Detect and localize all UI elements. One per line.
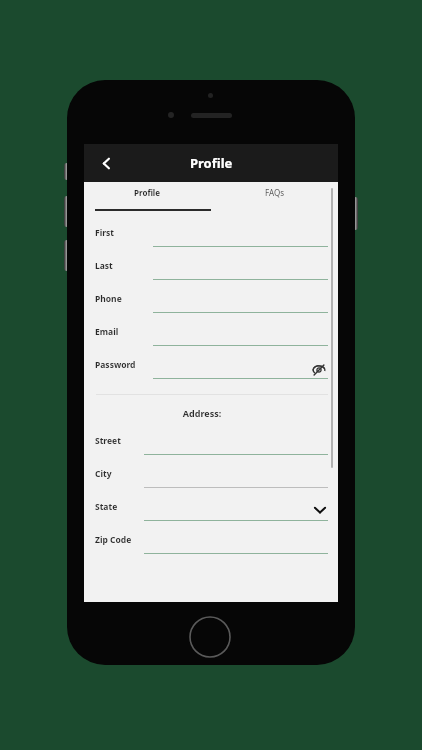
staticText: FAQs (265, 187, 285, 198)
button[interactable]: Email (84, 321, 338, 354)
button[interactable]: Show password (312, 363, 326, 377)
button[interactable]: Profile (84, 182, 211, 203)
button[interactable]: Street (84, 430, 338, 463)
button[interactable]: Back (91, 148, 121, 178)
staticText: Profile (190, 154, 233, 172)
button[interactable]: First (84, 222, 338, 255)
staticText: Phone (95, 293, 153, 305)
button[interactable]: City (84, 463, 338, 496)
staticText: City (95, 468, 144, 480)
button[interactable]: FAQs (211, 182, 338, 203)
staticText: Profile (134, 187, 161, 198)
button[interactable]: Password (84, 354, 338, 387)
staticText: Password (95, 359, 153, 371)
button[interactable]: Zip Code (84, 529, 338, 562)
staticText: Zip Code (95, 534, 144, 546)
button[interactable]: Select state (312, 502, 328, 518)
button[interactable]: Phone (84, 288, 338, 321)
staticText: State (95, 501, 144, 513)
staticText: Email (95, 326, 153, 338)
staticText: First (95, 227, 153, 239)
button[interactable]: State (84, 496, 338, 529)
staticText: Address: (84, 407, 320, 419)
staticText: Street (95, 435, 144, 447)
staticText: Last (95, 260, 153, 272)
button[interactable]: Last (84, 255, 338, 288)
